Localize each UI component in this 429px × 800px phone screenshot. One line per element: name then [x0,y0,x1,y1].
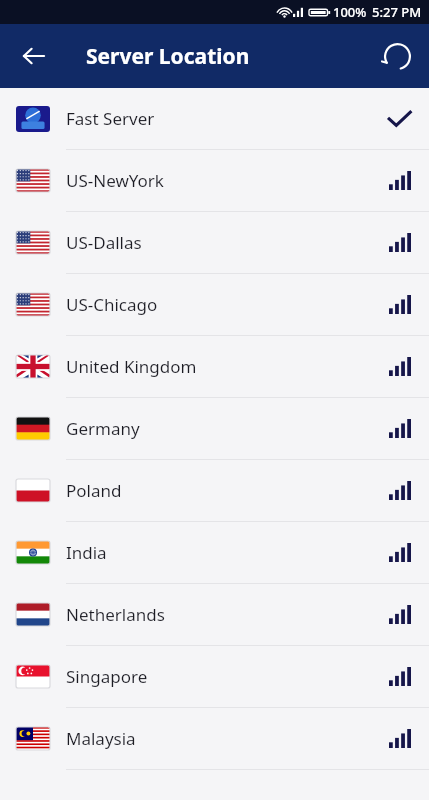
staticText: Server Location [86,42,250,71]
button[interactable]: Netherlands [0,584,429,645]
staticText: Germany [66,417,389,440]
button[interactable]: Singapore [0,646,429,707]
button[interactable]: Fast Server [0,88,429,149]
button[interactable]: United Kingdom [0,336,429,397]
staticText: Poland [66,479,389,502]
button[interactable]: Back [10,32,58,80]
staticText: Netherlands [66,603,389,626]
button[interactable]: Refresh [375,34,419,78]
button[interactable]: Germany [0,398,429,459]
button[interactable]: US-Dallas [0,212,429,273]
staticText: 5:27 PM [372,3,422,21]
button[interactable]: US-Chicago [0,274,429,335]
staticText: 100% [333,3,367,21]
staticText: Singapore [66,665,389,688]
staticText: US-NewYork [66,169,389,192]
staticText: Fast Server [66,107,388,130]
button[interactable]: US-NewYork [0,150,429,211]
button[interactable]: Malaysia [0,708,429,769]
staticText: US-Dallas [66,231,389,254]
staticText: US-Chicago [66,293,389,316]
button[interactable]: India [0,522,429,583]
staticText: United Kingdom [66,355,389,378]
staticText: India [66,541,389,564]
button[interactable]: Poland [0,460,429,521]
staticText: Malaysia [66,727,389,750]
